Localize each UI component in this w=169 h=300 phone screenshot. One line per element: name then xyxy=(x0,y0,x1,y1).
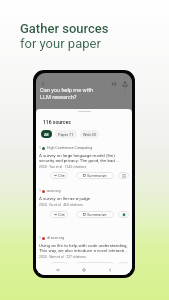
staticText: dl.acm.org xyxy=(47,236,65,240)
staticText: Using an llm to help with code understan… xyxy=(39,243,128,248)
button[interactable]: Share xyxy=(121,80,129,88)
button[interactable]: Summarize xyxy=(76,262,114,269)
staticText: Gather sources xyxy=(20,21,109,36)
button[interactable]: Summarize xyxy=(76,172,114,179)
staticText: Paper 71 xyxy=(58,132,74,137)
button[interactable]: 1 xyxy=(36,188,132,230)
staticText: 2024 · Nam et al · 227 citations xyxy=(39,255,86,259)
staticText: A survey on llm-as-a-judge xyxy=(39,196,91,201)
staticText: 116 sources xyxy=(43,119,71,125)
staticText: 1 xyxy=(39,146,41,150)
staticText: 2024 · Gu et al · 460 citations xyxy=(39,203,83,207)
button[interactable]: Paper 71 xyxy=(55,130,77,138)
button[interactable]: Summarize xyxy=(76,211,114,218)
button[interactable]: 1 xyxy=(36,145,132,188)
staticText: Can you help me with xyxy=(40,87,94,94)
button[interactable]: Save xyxy=(118,211,129,218)
button[interactable]: Cite xyxy=(50,262,68,269)
button[interactable]: Back xyxy=(39,80,47,88)
staticText: 1 xyxy=(39,189,41,193)
button[interactable]: Home xyxy=(80,266,88,274)
staticText: 1 xyxy=(39,236,41,240)
staticText: for your paper xyxy=(20,36,101,51)
button[interactable]: Save xyxy=(118,172,129,179)
button[interactable]: Display options xyxy=(110,80,118,88)
button[interactable]: Recent apps xyxy=(54,266,62,274)
button[interactable]: Back xyxy=(106,266,114,274)
button[interactable]: Web 30 xyxy=(80,130,99,138)
staticText: LLM research? xyxy=(40,94,77,101)
staticText: A survey on large language model (llm) xyxy=(39,153,115,158)
staticText: Cite xyxy=(58,212,65,217)
staticText: arxiv.org xyxy=(47,189,61,193)
button[interactable]: Cite xyxy=(50,172,68,179)
staticText: This way, we also introduce a novel inte… xyxy=(39,248,128,253)
button[interactable]: Save xyxy=(118,262,129,269)
staticText: Web 30 xyxy=(83,132,96,137)
button[interactable]: All xyxy=(41,130,52,138)
staticText: Summarize xyxy=(87,173,107,178)
staticText: Summarize xyxy=(87,212,107,217)
staticText: 2024 · Yao et al · 1342 citations xyxy=(39,165,87,169)
staticText: Cite xyxy=(58,173,65,178)
button[interactable]: 1 xyxy=(36,235,132,275)
staticText: All xyxy=(44,132,49,137)
button[interactable]: Cite xyxy=(50,211,68,218)
staticText: security and privacy: The good, the bad … xyxy=(39,158,120,163)
staticText: High Conference Computing xyxy=(47,146,93,150)
